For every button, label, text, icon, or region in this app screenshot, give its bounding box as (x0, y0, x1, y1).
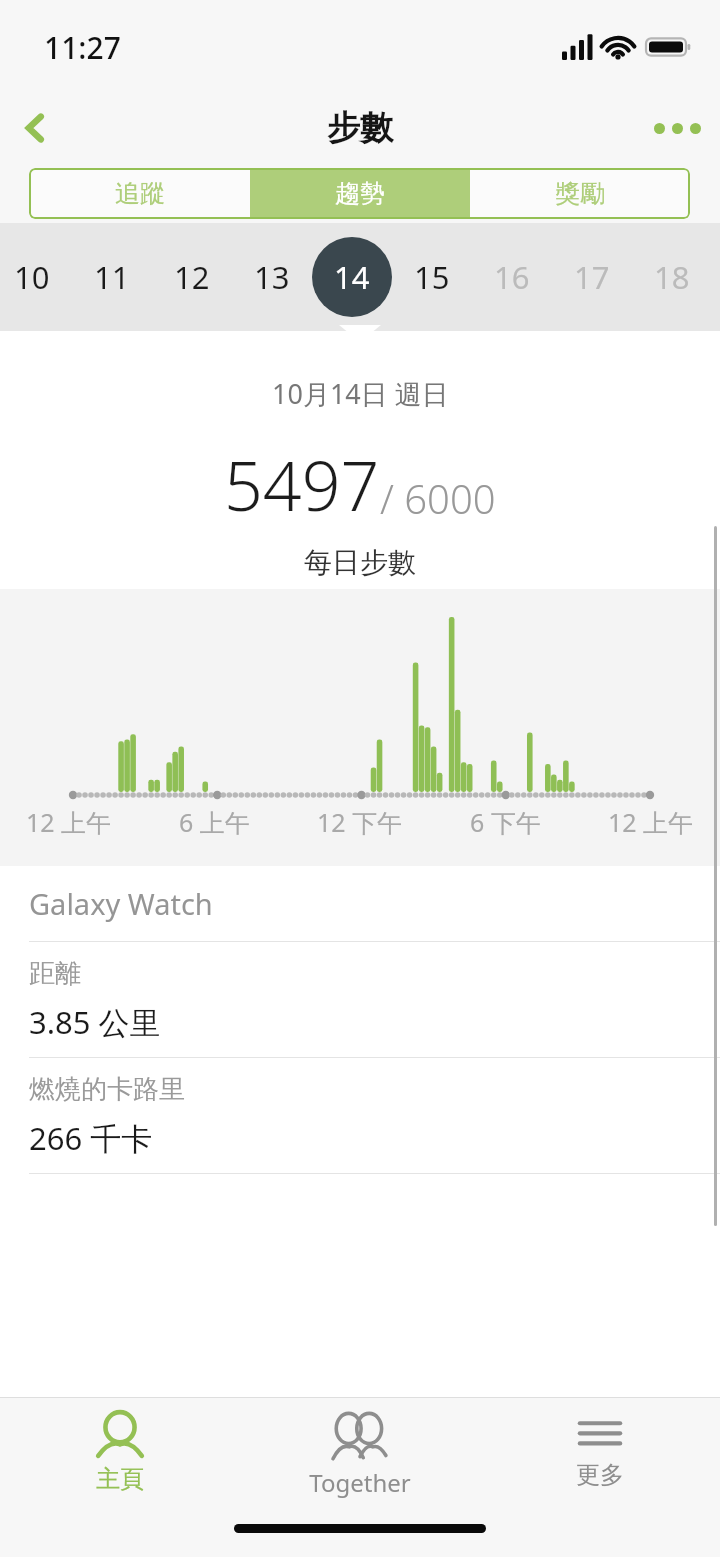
staticText: Galaxy Watch (29, 884, 213, 923)
staticText: 15 (414, 256, 450, 298)
staticText: Together (309, 1466, 411, 1499)
staticText: 266 千卡 (29, 1117, 153, 1159)
staticText: 3.85 公里 (29, 1001, 161, 1043)
button[interactable]: 距離 (0, 942, 720, 1057)
button[interactable]: 18 (632, 223, 712, 331)
button[interactable]: 16 (472, 223, 552, 331)
button[interactable]: 主頁 (0, 1398, 240, 1508)
button[interactable]: 趨勢 (250, 168, 470, 219)
staticText: 步數 (327, 107, 393, 149)
staticText: 更多 (576, 1460, 624, 1490)
button[interactable]: 17 (552, 223, 632, 331)
staticText: 12 上午 (608, 805, 694, 839)
button[interactable]: Galaxy Watch (0, 866, 720, 941)
staticText: 5497 (224, 438, 380, 531)
button[interactable]: 11 (72, 223, 152, 331)
staticText: 12 上午 (26, 805, 112, 839)
staticText: 追蹤 (115, 178, 165, 209)
button[interactable]: 14 (312, 223, 392, 331)
staticText: 趨勢 (335, 178, 385, 209)
button[interactable]: Together (240, 1398, 480, 1508)
staticText: 獎勵 (555, 178, 605, 209)
staticText: 每日步數 (304, 545, 416, 580)
button[interactable]: 15 (392, 223, 472, 331)
button[interactable]: 燃燒的卡路里 (0, 1058, 720, 1173)
button[interactable]: Back (0, 88, 72, 168)
staticText: 6 上午 (179, 805, 250, 839)
button[interactable]: 獎勵 (470, 168, 690, 219)
button[interactable]: 10 (0, 223, 72, 331)
staticText: 10月14日 週日 (272, 375, 449, 412)
staticText: 14 (334, 256, 370, 298)
staticText: 16 (494, 256, 530, 298)
button[interactable]: 追蹤 (29, 168, 250, 219)
staticText: 主頁 (96, 1464, 144, 1494)
staticText: 12 (174, 256, 210, 298)
staticText: 11 (94, 256, 130, 298)
staticText: 17 (574, 256, 610, 298)
staticText: / 6000 (380, 471, 496, 525)
button[interactable]: More options (634, 88, 720, 168)
button[interactable]: 13 (232, 223, 312, 331)
staticText: 距離 (29, 957, 81, 990)
staticText: 11:27 (44, 27, 121, 68)
staticText: 12 下午 (317, 805, 403, 839)
staticText: 10 (14, 256, 50, 298)
button[interactable]: 更多 (480, 1398, 720, 1508)
button[interactable]: 12 (152, 223, 232, 331)
staticText: 13 (254, 256, 290, 298)
staticText: 6 下午 (470, 805, 541, 839)
staticText: 18 (654, 256, 690, 298)
staticText: 燃燒的卡路里 (29, 1073, 185, 1106)
